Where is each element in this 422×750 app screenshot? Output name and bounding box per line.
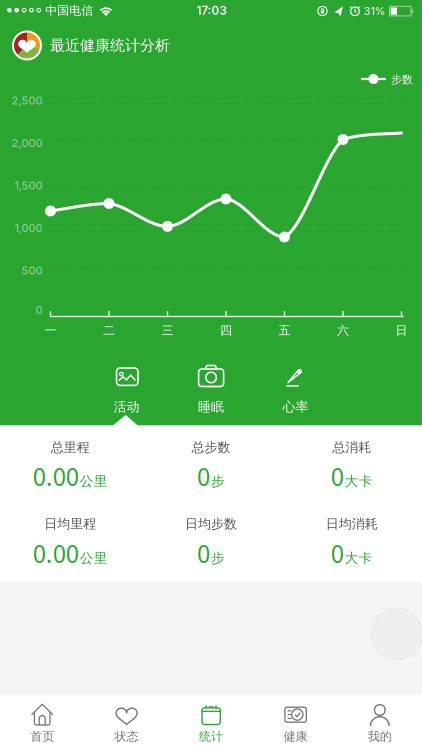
staticText: 日 xyxy=(395,323,407,338)
button[interactable]: 活动 xyxy=(84,358,169,418)
staticText: 四 xyxy=(220,323,232,338)
staticText: 0 xyxy=(197,535,210,570)
staticText: 0.00 xyxy=(33,535,79,570)
staticText: 总里程 xyxy=(51,439,90,456)
button[interactable]: 睡眠 xyxy=(169,358,253,418)
button[interactable]: 心率 xyxy=(253,358,338,418)
staticText: 公里 xyxy=(80,473,108,490)
staticText: 状态 xyxy=(115,729,139,744)
staticText: 0 xyxy=(331,535,344,570)
staticText: 统计 xyxy=(199,729,223,744)
staticText: 首页 xyxy=(30,729,54,744)
staticText: 活动 xyxy=(114,399,140,415)
staticText: 总步数 xyxy=(191,439,230,456)
staticText: 公里 xyxy=(80,550,108,567)
button[interactable]: 状态 xyxy=(84,695,169,750)
staticText: 总消耗 xyxy=(332,439,371,456)
staticText: 最近健康统计分析 xyxy=(50,36,170,55)
staticText: 日均里程 xyxy=(44,516,96,532)
staticText: 步 xyxy=(211,473,225,490)
staticText: 步数 xyxy=(391,73,413,86)
staticText: 31% xyxy=(363,4,385,18)
staticText: 健康 xyxy=(283,729,307,744)
staticText: 中国电信 xyxy=(45,3,93,18)
staticText: 一 xyxy=(44,323,56,338)
staticText: 心率 xyxy=(282,399,308,415)
staticText: 二 xyxy=(103,323,115,338)
staticText: 六 xyxy=(337,323,349,338)
button[interactable]: 健康 xyxy=(253,695,338,750)
button[interactable]: 统计 xyxy=(169,695,253,750)
staticText: 步 xyxy=(211,550,225,567)
staticText: 大卡 xyxy=(345,550,373,567)
staticText: 0 xyxy=(35,303,42,317)
staticText: 1,000 xyxy=(14,221,42,235)
staticText: 500 xyxy=(21,264,42,277)
staticText: 五 xyxy=(278,323,290,338)
staticText: 1,500 xyxy=(14,179,42,192)
staticText: 17:03 xyxy=(196,3,226,17)
button[interactable]: 我的 xyxy=(338,695,422,750)
button[interactable]: 首页 xyxy=(0,695,84,750)
staticText: 大卡 xyxy=(345,473,373,490)
staticText: 三 xyxy=(161,323,173,338)
staticText: 0.00 xyxy=(33,458,79,493)
staticText: 日均步数 xyxy=(185,516,237,532)
staticText: 日均消耗 xyxy=(326,516,378,532)
staticText: 我的 xyxy=(368,729,392,744)
staticText: 睡眠 xyxy=(198,399,224,415)
staticText: 0 xyxy=(331,458,344,493)
staticText: 2,500 xyxy=(11,94,42,107)
staticText: 0 xyxy=(197,458,210,493)
staticText: 2,000 xyxy=(11,136,42,150)
